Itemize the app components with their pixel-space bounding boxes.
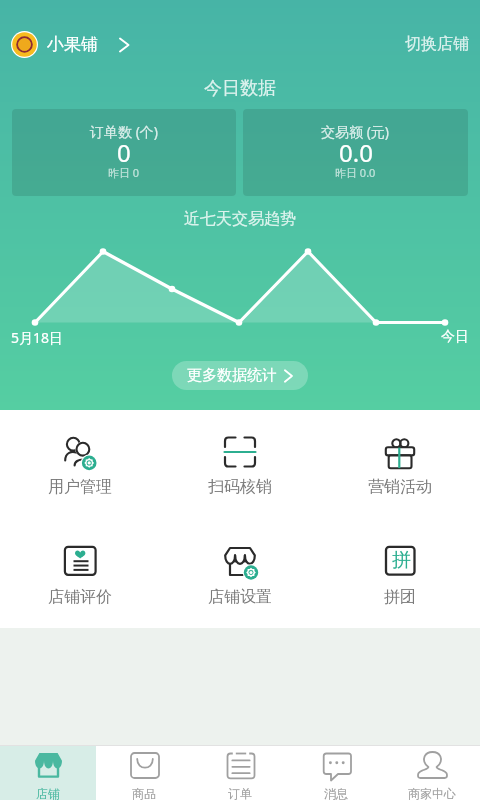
staticText: 店铺评价: [48, 587, 112, 607]
button[interactable]: 店铺: [0, 746, 96, 800]
button[interactable]: 交易额 (元): [243, 109, 468, 196]
staticText: 昨日 0.0: [335, 165, 376, 180]
staticText: 订单: [228, 786, 252, 800]
staticText: 扫码核销: [208, 477, 272, 497]
staticText: 拼: [392, 548, 411, 572]
staticText: 交易额 (元): [321, 122, 390, 141]
staticText: 小果铺: [47, 34, 98, 55]
button[interactable]: 店铺评价: [0, 541, 160, 611]
button[interactable]: 订单数 (个): [12, 109, 236, 196]
staticText: 营销活动: [368, 477, 432, 497]
button[interactable]: 更多数据统计: [172, 361, 308, 390]
staticText: 拼团: [384, 587, 416, 607]
staticText: 店铺设置: [208, 587, 272, 607]
button[interactable]: 消息: [288, 746, 384, 800]
staticText: 5月18日: [11, 328, 64, 347]
staticText: 用户管理: [48, 477, 112, 497]
button[interactable]: 用户管理: [0, 431, 160, 501]
staticText: 订单数 (个): [90, 122, 159, 141]
staticText: 商家中心: [408, 786, 456, 800]
button[interactable]: 订单: [192, 746, 288, 800]
staticText: 消息: [324, 786, 348, 800]
staticText: 今日: [441, 328, 469, 346]
staticText: 0: [117, 136, 131, 169]
staticText: 更多数据统计: [187, 366, 277, 385]
staticText: 商品: [132, 786, 156, 800]
staticText: 0.0: [339, 136, 373, 169]
button[interactable]: 扫码核销: [160, 431, 320, 501]
button[interactable]: 店铺设置: [160, 541, 320, 611]
button[interactable]: 切换店铺: [393, 30, 480, 58]
staticText: 店铺: [36, 786, 60, 800]
button[interactable]: 小果铺: [0, 31, 138, 58]
staticText: 切换店铺: [405, 34, 469, 54]
staticText: 近七天交易趋势: [184, 209, 296, 229]
staticText: 今日数据: [204, 77, 276, 100]
button[interactable]: 拼: [320, 541, 480, 611]
staticText: 昨日 0: [108, 165, 140, 180]
button[interactable]: 商家中心: [384, 746, 480, 800]
button[interactable]: 营销活动: [320, 431, 480, 501]
button[interactable]: 商品: [96, 746, 192, 800]
